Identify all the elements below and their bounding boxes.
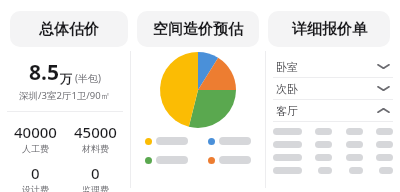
button[interactable]: 卧室 (273, 56, 393, 78)
staticText: 人工费 (22, 143, 49, 154)
button[interactable] (208, 156, 251, 164)
other: Collapse (377, 104, 390, 117)
button[interactable]: 总体估价 (10, 11, 128, 47)
staticText: 详细报价单 (292, 20, 367, 39)
staticText: 深圳/3室2厅1卫/90㎡ (19, 89, 111, 102)
button[interactable]: 详细报价单 (268, 11, 390, 47)
staticText: 卧室 (276, 60, 377, 74)
staticText: (半包) (75, 71, 101, 85)
staticText: 材料费 (82, 143, 109, 154)
other: Expand (377, 60, 390, 73)
button[interactable]: 0 (65, 163, 125, 192)
staticText: 客厅 (276, 104, 377, 118)
button[interactable]: 次卧 (273, 78, 393, 100)
button[interactable]: 40000 (5, 122, 65, 154)
staticText: 次卧 (276, 82, 377, 96)
button[interactable]: 45000 (65, 122, 125, 154)
staticText: 0 (31, 163, 40, 183)
staticText: 万 (60, 71, 72, 86)
staticText: 设计费 (22, 184, 49, 192)
staticText: 总体估价 (39, 20, 99, 39)
button[interactable]: 空间造价预估 (137, 11, 259, 47)
button[interactable] (145, 137, 188, 145)
staticText: 8.5 (29, 58, 59, 87)
staticText: 空间造价预估 (153, 20, 243, 39)
staticText: 45000 (74, 122, 117, 142)
button[interactable]: 客厅 (273, 100, 393, 122)
button[interactable] (145, 156, 188, 164)
staticText: 40000 (14, 122, 57, 142)
button[interactable]: 0 (5, 163, 65, 192)
staticText: 监理费 (82, 184, 109, 192)
button[interactable] (208, 137, 251, 145)
other: Expand (377, 82, 390, 95)
staticText: 0 (91, 163, 100, 183)
